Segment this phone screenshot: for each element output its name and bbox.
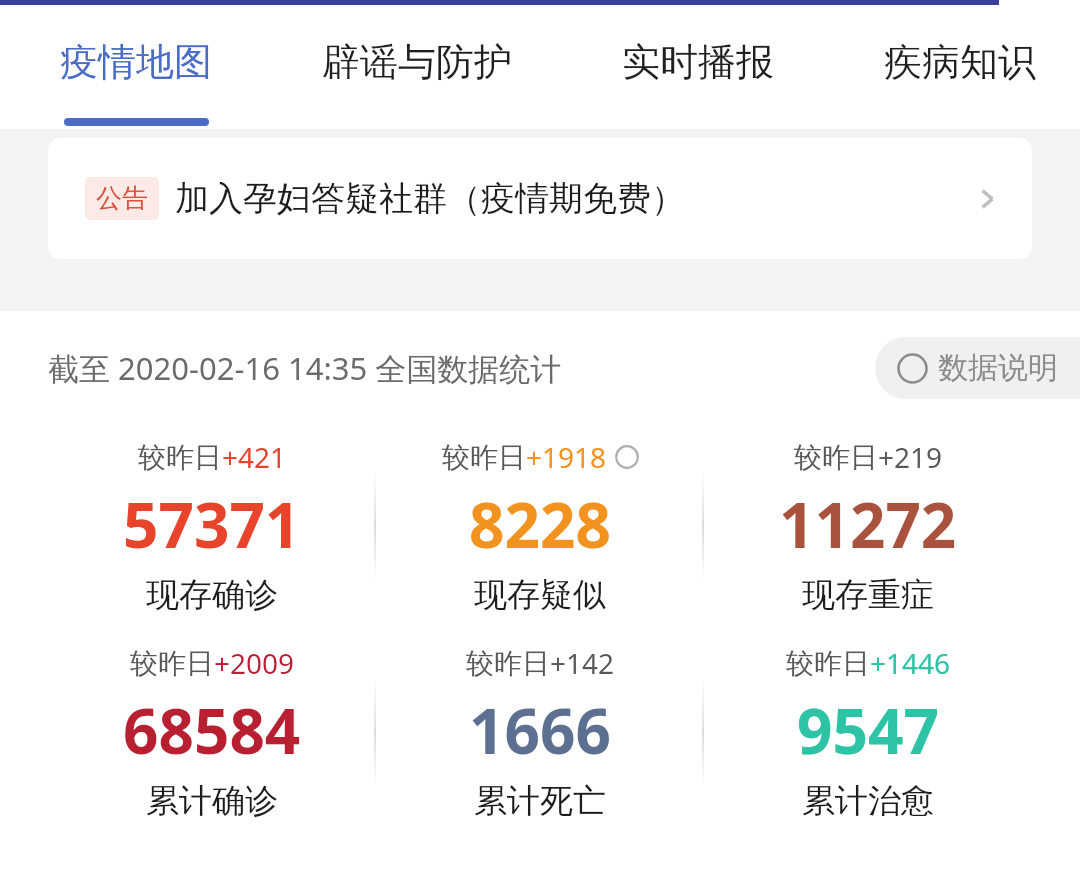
staticText: 累计死亡 — [474, 780, 606, 822]
staticText: +1446 — [870, 644, 951, 682]
staticText: 辟谣与防护 — [322, 38, 512, 86]
staticText: 截至 2020-02-16 14:35 全国数据统计 — [48, 347, 562, 389]
button[interactable]: 数据说明 — [875, 337, 1080, 399]
staticText: 累计确诊 — [146, 780, 278, 822]
button[interactable]: 较昨日 — [704, 630, 1032, 836]
staticText: 较昨日 — [794, 440, 878, 475]
staticText: 较昨日 — [130, 646, 214, 681]
staticText: 数据说明 — [938, 349, 1058, 387]
staticText: 8228 — [469, 482, 611, 566]
staticText: 公告 — [96, 182, 148, 215]
staticText: 疾病知识 — [884, 38, 1036, 86]
staticText: 较昨日 — [786, 646, 870, 681]
button[interactable]: 实时播报 — [618, 32, 778, 92]
button[interactable]: 疫情地图 — [56, 32, 216, 92]
button[interactable]: 较昨日 — [48, 630, 376, 836]
staticText: 1666 — [469, 688, 611, 772]
staticText: 疫情地图 — [60, 38, 212, 86]
staticText: 现存疑似 — [474, 574, 606, 616]
staticText: 68584 — [123, 688, 301, 772]
staticText: 现存确诊 — [146, 574, 278, 616]
staticText: +219 — [878, 438, 943, 476]
staticText: 较昨日 — [466, 646, 550, 681]
button[interactable]: 较昨日 — [376, 630, 704, 836]
staticText: 9547 — [797, 688, 939, 772]
staticText: 较昨日 — [442, 440, 526, 475]
staticText: 57371 — [123, 482, 301, 566]
button[interactable]: 公告 — [48, 138, 1032, 259]
other: Open — [972, 184, 1002, 214]
staticText: +2009 — [214, 644, 295, 682]
staticText: 较昨日 — [138, 440, 222, 475]
button[interactable]: 疾病知识 — [880, 32, 1040, 92]
button[interactable]: 较昨日 — [376, 424, 704, 630]
button[interactable]: 较昨日 — [704, 424, 1032, 630]
staticText: 实时播报 — [622, 38, 774, 86]
staticText: 现存重症 — [802, 574, 934, 616]
staticText: +142 — [550, 644, 615, 682]
staticText: 11272 — [779, 482, 957, 566]
button[interactable]: 辟谣与防护 — [318, 32, 516, 92]
button[interactable]: 较昨日 — [48, 424, 376, 630]
staticText: 加入孕妇答疑社群（疫情期免费） — [175, 177, 685, 220]
staticText: +1918 — [526, 438, 607, 476]
staticText: 累计治愈 — [802, 780, 934, 822]
staticText: +421 — [222, 438, 287, 476]
